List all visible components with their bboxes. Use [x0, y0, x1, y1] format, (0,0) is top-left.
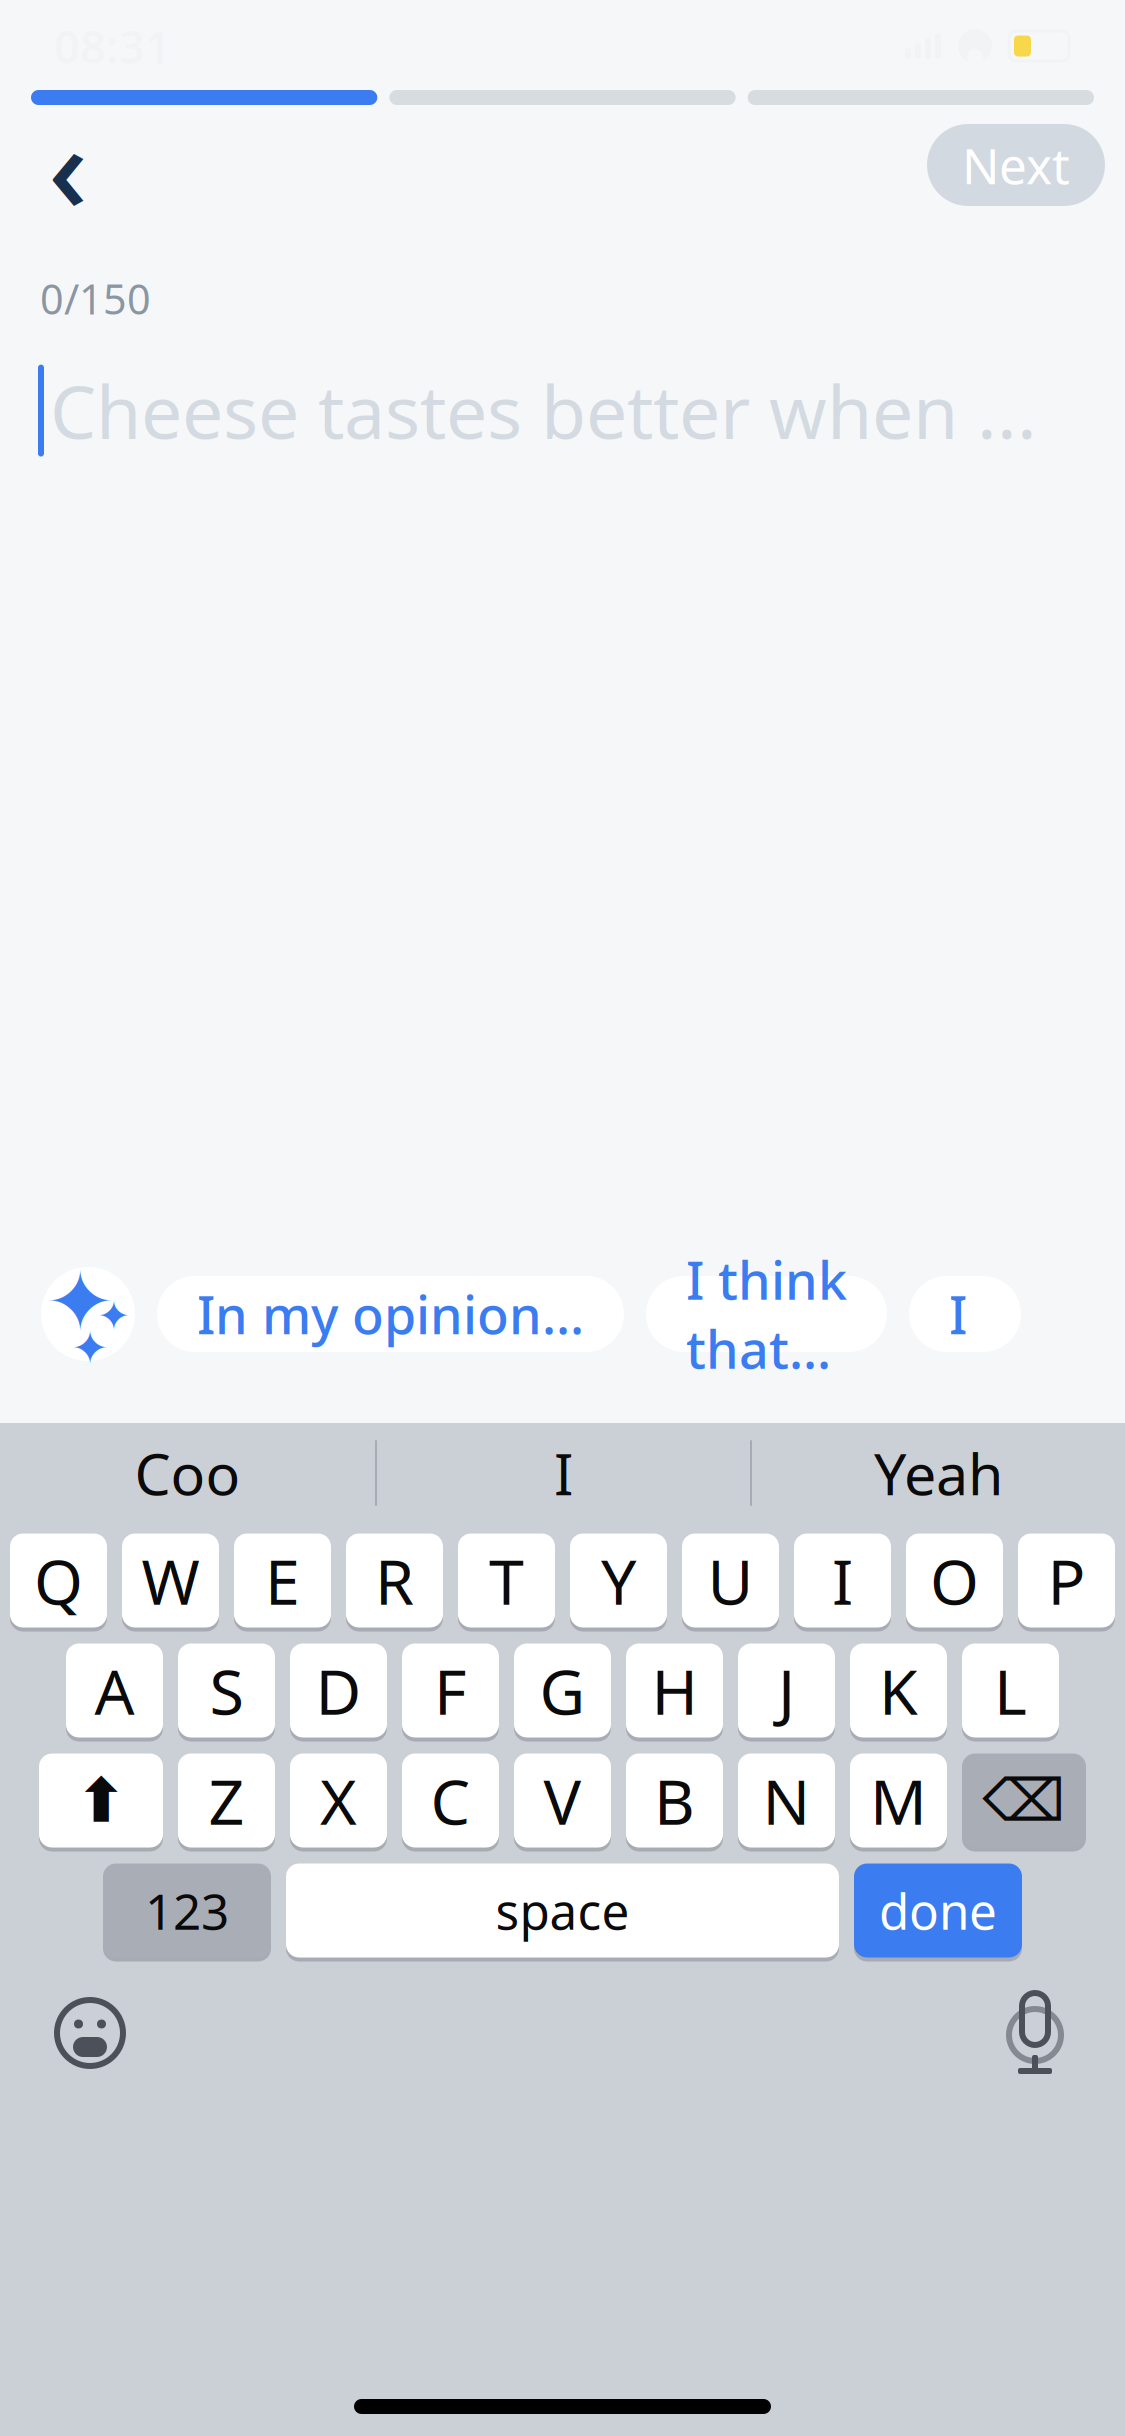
- button[interactable]: P: [1018, 1531, 1115, 1630]
- button[interactable]: Delete: [962, 1751, 1086, 1850]
- staticText: M: [870, 1759, 927, 1842]
- button[interactable]: S: [178, 1641, 275, 1740]
- button[interactable]: D: [290, 1641, 387, 1740]
- staticText: V: [543, 1759, 581, 1842]
- button[interactable]: U: [682, 1531, 779, 1630]
- button[interactable]: Z: [178, 1751, 275, 1850]
- button[interactable]: 123: [103, 1861, 271, 1960]
- staticText: 0/150: [40, 271, 151, 326]
- button[interactable]: L: [962, 1641, 1059, 1740]
- button[interactable]: E: [234, 1531, 331, 1630]
- button[interactable]: done: [854, 1861, 1022, 1960]
- staticText: P: [1047, 1539, 1085, 1622]
- button[interactable]: Y: [570, 1531, 667, 1630]
- staticText: N: [762, 1759, 810, 1842]
- staticText: Y: [601, 1539, 636, 1622]
- staticText: D: [315, 1649, 361, 1732]
- button[interactable]: Yeah: [752, 1423, 1125, 1523]
- button[interactable]: N: [738, 1751, 835, 1850]
- staticText: L: [994, 1649, 1027, 1732]
- staticText: J: [778, 1649, 795, 1732]
- button[interactable]: Q: [10, 1531, 107, 1630]
- staticText: space: [495, 1878, 629, 1943]
- staticText: A: [94, 1649, 134, 1732]
- button[interactable]: O: [906, 1531, 1003, 1630]
- staticText: ✦: [97, 1293, 131, 1339]
- button[interactable]: C: [402, 1751, 499, 1850]
- staticText: G: [539, 1649, 585, 1732]
- staticText: done: [879, 1878, 997, 1943]
- button[interactable]: Back: [20, 117, 116, 213]
- staticText: R: [375, 1539, 414, 1622]
- staticText: ✦: [71, 1322, 109, 1374]
- staticText: ✦: [45, 1255, 114, 1349]
- button[interactable]: K: [850, 1641, 947, 1740]
- staticText: I: [554, 1435, 573, 1511]
- staticText: ⌫: [982, 1767, 1065, 1834]
- staticText: K: [879, 1649, 918, 1732]
- staticText: ‹: [48, 84, 88, 246]
- button[interactable]: V: [514, 1751, 611, 1850]
- button[interactable]: J: [738, 1641, 835, 1740]
- staticText: Next: [962, 132, 1070, 198]
- staticText: B: [654, 1759, 695, 1842]
- staticText: 123: [145, 1878, 229, 1943]
- button[interactable]: F: [402, 1641, 499, 1740]
- button[interactable]: H: [626, 1641, 723, 1740]
- staticText: Coo: [134, 1435, 240, 1511]
- staticText: I think that...: [686, 1245, 847, 1383]
- button[interactable]: Emoji: [30, 1978, 150, 2088]
- button[interactable]: Shift: [39, 1751, 163, 1850]
- button[interactable]: I: [794, 1531, 891, 1630]
- staticText: I: [949, 1279, 981, 1349]
- staticText: F: [434, 1649, 467, 1732]
- button[interactable]: W: [122, 1531, 219, 1630]
- staticText: T: [489, 1539, 524, 1622]
- staticText: Yeah: [874, 1435, 1003, 1511]
- button[interactable]: R: [346, 1531, 443, 1630]
- button[interactable]: I: [909, 1276, 1021, 1352]
- staticText: ⬆: [75, 1766, 126, 1835]
- staticText: O: [930, 1539, 979, 1622]
- staticText: H: [651, 1649, 697, 1732]
- staticText: Z: [208, 1759, 244, 1842]
- staticText: U: [707, 1539, 753, 1622]
- staticText: S: [209, 1649, 243, 1732]
- button[interactable]: I think that...: [646, 1276, 887, 1352]
- button[interactable]: I: [377, 1423, 750, 1523]
- staticText: X: [320, 1759, 357, 1842]
- button[interactable]: Next: [927, 124, 1105, 206]
- button[interactable]: In my opinion...: [157, 1276, 624, 1352]
- button[interactable]: B: [626, 1751, 723, 1850]
- staticText: C: [430, 1759, 470, 1842]
- button[interactable]: X: [290, 1751, 387, 1850]
- button[interactable]: M: [850, 1751, 947, 1850]
- staticText: W: [141, 1539, 199, 1622]
- button[interactable]: T: [458, 1531, 555, 1630]
- staticText: Cheese tastes better when ...: [50, 362, 1037, 459]
- staticText: I: [832, 1539, 853, 1622]
- staticText: Q: [34, 1539, 83, 1622]
- staticText: E: [265, 1539, 300, 1622]
- button[interactable]: A: [66, 1641, 163, 1740]
- button[interactable]: space: [286, 1861, 839, 1960]
- button[interactable]: AI suggestions: [41, 1267, 135, 1361]
- button[interactable]: Coo: [0, 1423, 375, 1523]
- staticText: In my opinion...: [197, 1279, 584, 1349]
- button[interactable]: Dictation: [975, 1978, 1095, 2088]
- button[interactable]: G: [514, 1641, 611, 1740]
